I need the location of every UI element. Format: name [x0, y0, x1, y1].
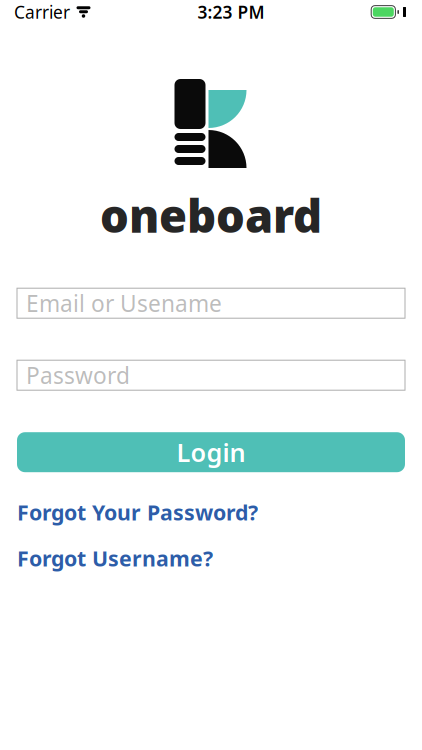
button[interactable]: Login — [17, 432, 405, 472]
button[interactable]: Forgot Your Password? — [0, 500, 422, 524]
staticText: Forgot Username? — [17, 544, 213, 572]
staticText: Login — [176, 435, 245, 469]
staticText: Email or Usename — [26, 288, 222, 318]
staticText: Carrier — [14, 0, 70, 23]
staticText: Password — [26, 360, 130, 390]
button[interactable]: Forgot Username? — [0, 546, 422, 570]
staticText: Forgot Your Password? — [17, 498, 258, 526]
staticText: oneboard — [100, 185, 322, 245]
staticText: 3:23 PM — [198, 0, 265, 23]
